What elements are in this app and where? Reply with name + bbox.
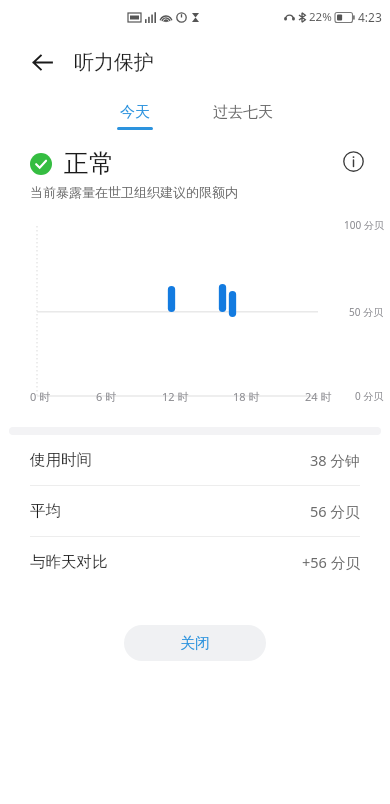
button[interactable]: 今天 — [111, 103, 159, 130]
staticText: 与昨天对比 — [30, 552, 108, 572]
staticText: 4:23 — [358, 9, 382, 25]
staticText: 38 分钟 — [310, 450, 360, 470]
button[interactable]: 平均 — [0, 486, 390, 537]
button[interactable]: 与昨天对比 — [0, 537, 390, 587]
staticText: 50 分贝 — [349, 305, 384, 319]
staticText: +56 分贝 — [302, 552, 360, 572]
staticText: 听力保护 — [74, 50, 154, 75]
staticText: 关闭 — [180, 634, 210, 653]
staticText: 0 时 — [30, 389, 51, 404]
staticText: 6 时 — [96, 389, 117, 404]
staticText: 56 分贝 — [310, 501, 360, 521]
staticText: 12 时 — [162, 389, 189, 404]
staticText: 当前暴露量在世卫组织建议的限额内 — [30, 184, 238, 200]
staticText: 100 分贝 — [344, 218, 384, 232]
staticText: 平均 — [30, 501, 61, 521]
button[interactable]: 使用时间 — [0, 435, 390, 486]
staticText: 正常 — [64, 148, 114, 179]
staticText: 18 时 — [233, 389, 260, 404]
staticText: 22% — [309, 9, 332, 25]
button[interactable]: 过去七天 — [207, 103, 279, 130]
button[interactable]: 返回 — [22, 42, 62, 82]
staticText: 过去七天 — [213, 103, 273, 122]
staticText: 使用时间 — [30, 450, 92, 470]
staticText: 24 时 — [305, 389, 332, 404]
button[interactable]: 信息 — [340, 148, 366, 174]
staticText: 今天 — [120, 103, 150, 122]
staticText: 0 分贝 — [355, 389, 384, 403]
button[interactable]: 关闭 — [124, 625, 266, 661]
